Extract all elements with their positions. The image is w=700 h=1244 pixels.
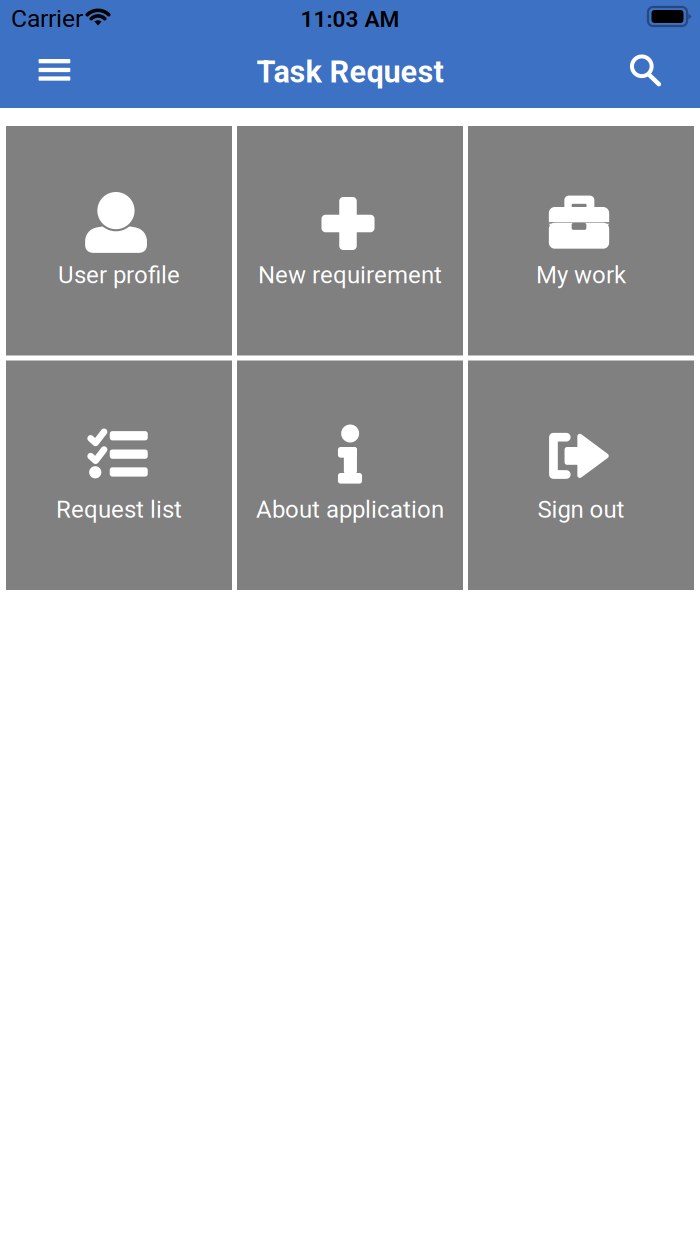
staticText: About application <box>256 495 444 524</box>
staticText: 11:03 AM <box>300 6 399 33</box>
staticText: Sign out <box>537 495 624 524</box>
staticText: Carrier <box>11 4 83 33</box>
button[interactable]: Menu <box>22 44 87 95</box>
staticText: User profile <box>58 261 180 289</box>
staticText: My work <box>536 261 626 289</box>
button[interactable]: User profile <box>6 126 232 355</box>
button[interactable]: About application <box>237 360 463 590</box>
button[interactable]: Search <box>614 45 679 96</box>
staticText: Task Request <box>256 54 443 90</box>
staticText: Request list <box>56 495 182 524</box>
staticText: New requirement <box>258 261 442 289</box>
button[interactable]: My work <box>468 126 694 355</box>
button[interactable]: Sign out <box>468 360 694 590</box>
button[interactable]: New requirement <box>237 126 463 355</box>
button[interactable]: Request list <box>6 360 232 590</box>
